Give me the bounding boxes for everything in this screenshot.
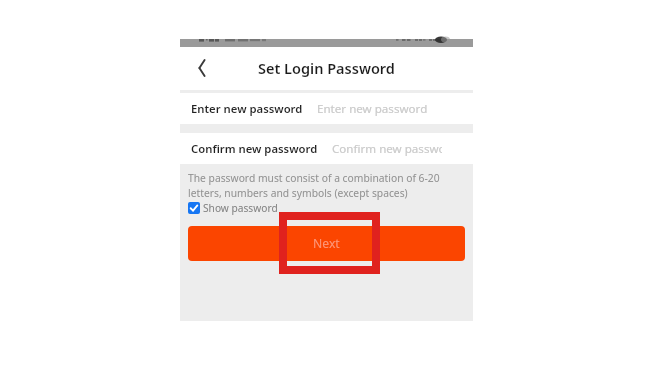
button[interactable]: Show password bbox=[188, 201, 278, 215]
staticText: Enter new password bbox=[317, 101, 428, 117]
staticText: Show password bbox=[203, 201, 278, 215]
staticText: Confirm new password bbox=[191, 141, 318, 156]
button[interactable]: Next bbox=[188, 226, 465, 261]
staticText: The password must consist of a combinati… bbox=[188, 171, 440, 200]
button[interactable]: Back bbox=[190, 56, 214, 80]
button[interactable]: Confirm new password bbox=[180, 133, 473, 164]
staticText: Next bbox=[313, 235, 340, 252]
staticText: Set Login Password bbox=[258, 58, 395, 78]
button[interactable]: Enter new password bbox=[180, 93, 473, 124]
staticText: Confirm new password bbox=[332, 141, 442, 157]
staticText: Enter new password bbox=[191, 101, 303, 116]
